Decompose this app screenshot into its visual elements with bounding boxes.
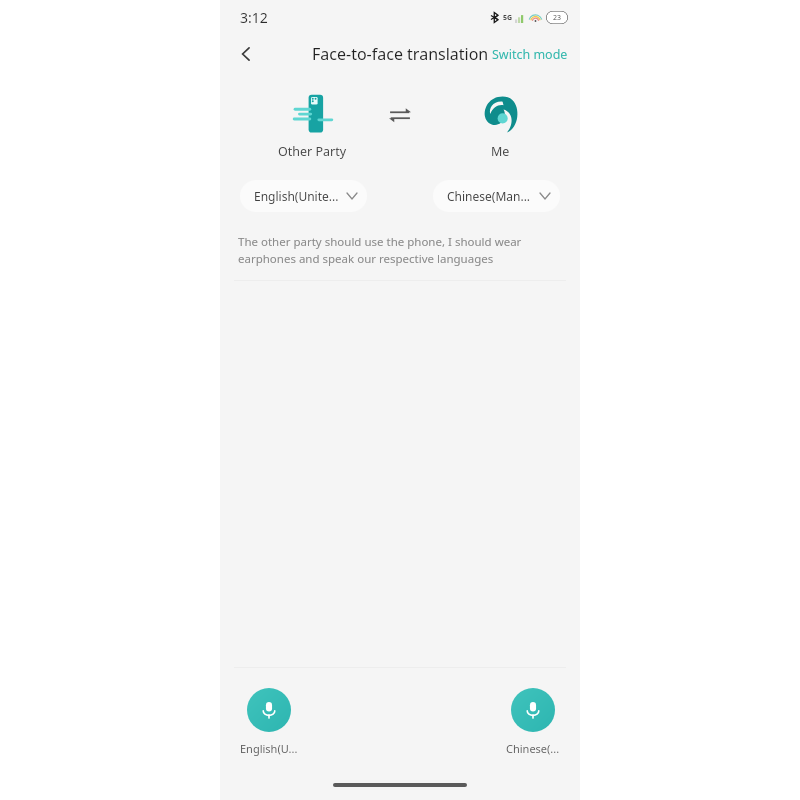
staticText: Chinese(Man... xyxy=(447,188,531,204)
button[interactable]: Switch mode xyxy=(488,40,572,69)
button[interactable]: English(Unite... xyxy=(240,180,367,212)
staticText: Chinese(... xyxy=(506,741,560,756)
staticText: English(Unite... xyxy=(254,188,339,204)
staticText: 23 xyxy=(553,13,562,23)
staticText: Me xyxy=(491,143,510,160)
button[interactable]: Me xyxy=(478,92,522,160)
staticText: Switch mode xyxy=(492,46,568,63)
staticText: 5G xyxy=(503,13,513,23)
staticText: 3:12 xyxy=(240,8,268,27)
button[interactable]: Record English xyxy=(240,688,298,756)
staticText: The other party should use the phone, I … xyxy=(238,234,562,266)
button[interactable]: Chinese(Man... xyxy=(433,180,560,212)
button[interactable]: Other Party xyxy=(278,92,347,160)
button[interactable]: Back xyxy=(228,36,264,72)
button[interactable]: Record Chinese xyxy=(506,688,560,756)
staticText: Face-to-face translation xyxy=(312,43,489,65)
button[interactable]: Swap languages xyxy=(383,98,417,132)
staticText: English(U... xyxy=(240,741,298,756)
staticText: Other Party xyxy=(278,143,347,160)
